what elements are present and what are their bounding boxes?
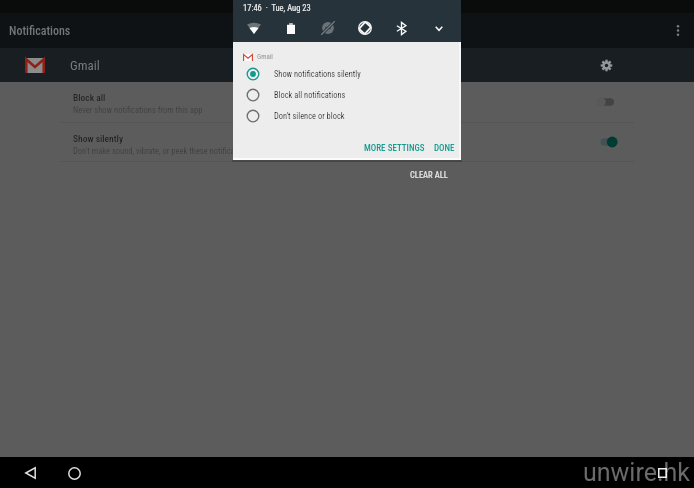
button[interactable]: Settings: [593, 52, 619, 78]
button[interactable]: CLEAR ALL: [404, 168, 454, 182]
button[interactable]: Battery: [272, 14, 309, 42]
button[interactable]: Gmail: [0, 48, 694, 82]
button[interactable]: Show silently: [0, 123, 694, 162]
staticText: Notifications: [9, 24, 71, 38]
staticText: Block all notifications: [274, 90, 346, 100]
staticText: Gmail: [257, 53, 273, 61]
button[interactable]: Back: [18, 461, 42, 485]
button[interactable]: Show notifications silently: [233, 63, 461, 84]
button[interactable]: Block all: [0, 82, 694, 123]
button[interactable]: More options: [662, 13, 694, 48]
staticText: Don't make sound, vibrate, or peek these…: [73, 146, 252, 156]
button[interactable]: Block all notifications: [233, 84, 461, 105]
button[interactable]: Wi-Fi: [235, 14, 272, 42]
staticText: MORE SETTINGS: [364, 143, 425, 154]
staticText: Never show notifications from this app: [73, 105, 203, 115]
staticText: Don't silence or block: [274, 111, 345, 121]
button[interactable]: Expand: [420, 14, 457, 42]
button[interactable]: Do not disturb: [309, 14, 346, 42]
button[interactable]: Recents: [650, 461, 674, 485]
button[interactable]: MORE SETTINGS: [360, 139, 429, 158]
staticText: CLEAR ALL: [410, 170, 448, 180]
button[interactable]: Bluetooth: [383, 14, 420, 42]
button[interactable]: Home: [62, 461, 86, 485]
button[interactable]: Don't silence or block: [233, 105, 461, 126]
button[interactable]: Auto rotate: [346, 14, 383, 42]
staticText: Show silently: [73, 133, 124, 144]
staticText: Show notifications silently: [274, 69, 361, 79]
staticText: DONE: [434, 143, 455, 154]
button[interactable]: DONE: [430, 139, 459, 158]
staticText: Gmail: [70, 58, 100, 73]
staticText: Block all: [73, 92, 106, 103]
staticText: 17:46 · Tue, Aug 23: [243, 3, 311, 13]
staticText: unwire.hk: [583, 458, 690, 487]
